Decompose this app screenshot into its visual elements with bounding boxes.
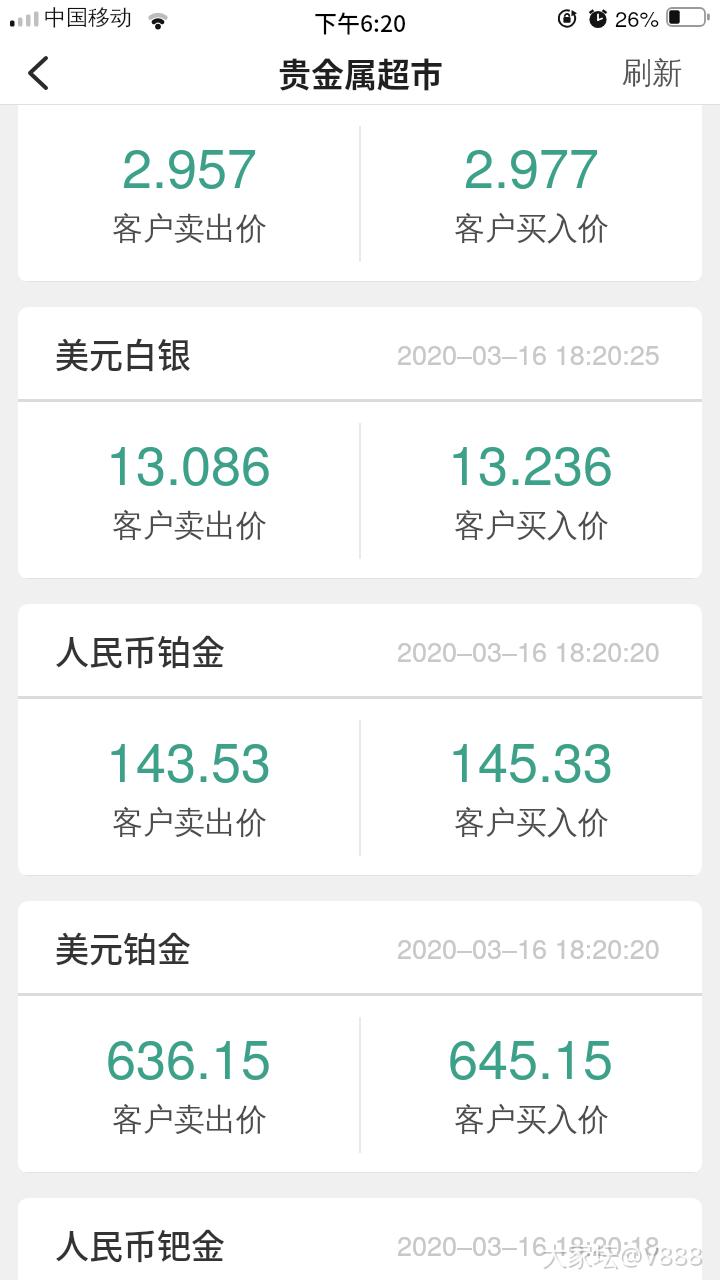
staticText: 客户买入价 xyxy=(454,803,609,842)
staticText: 客户卖出价 xyxy=(112,506,267,545)
staticText: 中国移动 xyxy=(44,4,132,32)
staticText: 美元铂金 xyxy=(55,923,191,972)
staticText: 2020–03–16 18:20:25 xyxy=(397,334,660,373)
staticText: 645.15 xyxy=(448,1017,614,1094)
staticText: 客户买入价 xyxy=(454,506,609,545)
staticText: 2020–03–16 18:20:20 xyxy=(397,631,660,670)
button[interactable]: 人民币钯金 xyxy=(18,1198,702,1280)
staticText: 客户卖出价 xyxy=(112,1100,267,1139)
staticText: 13.236 xyxy=(448,423,614,500)
staticText: 客户卖出价 xyxy=(112,209,267,248)
staticText: 客户卖出价 xyxy=(112,803,267,842)
staticText: 贵金属超市 xyxy=(278,49,443,97)
button[interactable]: 人民币铂金 xyxy=(18,604,702,876)
button[interactable]: 美元铂金 xyxy=(18,901,702,1173)
button[interactable]: 美元白银 xyxy=(18,307,702,579)
staticText: 13.086 xyxy=(106,423,272,500)
staticText: 145.33 xyxy=(448,720,614,797)
staticText: 下午6:20 xyxy=(314,5,407,38)
staticText: 2.977 xyxy=(464,126,600,203)
staticText: 143.53 xyxy=(106,720,272,797)
staticText: 美元白银 xyxy=(55,329,191,378)
staticText: 2020–03–16 18:20:18 xyxy=(397,1225,660,1264)
staticText: 人民币钯金 xyxy=(55,1220,225,1269)
staticText: 大家坛@V888 xyxy=(540,1236,702,1272)
staticText: 2020–03–16 18:20:20 xyxy=(397,928,660,967)
button[interactable] xyxy=(16,51,60,95)
button[interactable]: 刷新 xyxy=(622,54,682,92)
staticText: 人民币铂金 xyxy=(55,626,225,675)
staticText: 2.957 xyxy=(122,126,258,203)
staticText: 26% xyxy=(615,2,660,34)
staticText: 客户买入价 xyxy=(454,209,609,248)
staticText: 大家坛@V888 xyxy=(542,1238,704,1274)
staticText: 客户买入价 xyxy=(454,1100,609,1139)
button[interactable]: 2.957 xyxy=(18,105,702,282)
staticText: 636.15 xyxy=(106,1017,272,1094)
staticText: 刷新 xyxy=(622,54,682,92)
